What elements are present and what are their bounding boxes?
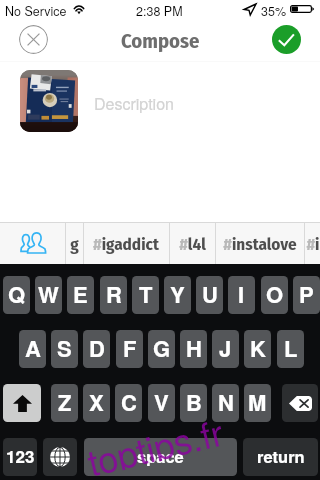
staticText: L bbox=[284, 332, 298, 364]
button[interactable]: U bbox=[196, 276, 223, 314]
button[interactable]: D bbox=[83, 330, 110, 368]
staticText: A bbox=[25, 332, 41, 364]
button[interactable]: E bbox=[67, 276, 94, 314]
staticText: 123 bbox=[6, 444, 35, 468]
button[interactable]: H bbox=[180, 330, 207, 368]
staticText: V bbox=[154, 386, 169, 418]
staticText: H bbox=[186, 332, 202, 364]
staticText: J bbox=[219, 332, 232, 364]
staticText: No Service bbox=[5, 2, 67, 20]
staticText: Y bbox=[170, 278, 185, 310]
button[interactable]: W bbox=[35, 276, 62, 314]
button[interactable]: M bbox=[244, 384, 271, 422]
staticText: W bbox=[38, 278, 59, 310]
staticText: B bbox=[186, 386, 202, 418]
button[interactable]: Tag people bbox=[0, 222, 65, 264]
staticText: U bbox=[202, 278, 218, 310]
staticText: G bbox=[153, 332, 171, 364]
button[interactable]: F bbox=[116, 330, 143, 368]
button[interactable]: #igaddict bbox=[83, 223, 169, 264]
button[interactable]: Shift bbox=[3, 384, 41, 422]
button[interactable]: Post bbox=[272, 25, 301, 54]
staticText: Q bbox=[8, 278, 26, 310]
button[interactable]: X bbox=[83, 384, 110, 422]
staticText: F bbox=[123, 332, 137, 364]
staticText: #l4l bbox=[179, 234, 206, 254]
button[interactable]: Q bbox=[3, 276, 30, 314]
staticText: X bbox=[89, 386, 104, 418]
staticText: T bbox=[139, 278, 153, 310]
staticText: D bbox=[89, 332, 105, 364]
button[interactable]: Y bbox=[164, 276, 191, 314]
button[interactable]: P bbox=[293, 276, 320, 314]
button[interactable]: S bbox=[51, 330, 78, 368]
staticText: R bbox=[106, 278, 122, 310]
button[interactable]: G bbox=[148, 330, 175, 368]
button[interactable]: g bbox=[65, 223, 83, 264]
staticText: Z bbox=[58, 386, 72, 418]
staticText: #igaddict bbox=[93, 234, 159, 254]
staticText: return bbox=[257, 444, 305, 468]
button[interactable]: Backspace bbox=[282, 384, 318, 422]
staticText: space bbox=[137, 444, 184, 468]
button[interactable]: O bbox=[261, 276, 288, 314]
button[interactable]: A bbox=[19, 330, 46, 368]
button[interactable]: L bbox=[277, 330, 304, 368]
staticText: M bbox=[248, 386, 267, 418]
staticText: 2:38 PM bbox=[136, 2, 183, 20]
staticText: #i bbox=[306, 234, 320, 254]
button[interactable]: V bbox=[148, 384, 175, 422]
button[interactable]: #l4l bbox=[169, 223, 215, 264]
button[interactable]: C bbox=[115, 384, 142, 422]
staticText: C bbox=[121, 386, 137, 418]
button[interactable]: K bbox=[244, 330, 271, 368]
staticText: S bbox=[57, 332, 72, 364]
button[interactable]: I bbox=[228, 276, 255, 314]
button[interactable]: Change keyboard bbox=[43, 438, 77, 476]
staticText: toptips.fr bbox=[82, 405, 226, 478]
staticText: 35% bbox=[261, 2, 287, 20]
staticText: N bbox=[218, 386, 234, 418]
button[interactable]: T bbox=[132, 276, 159, 314]
staticText: E bbox=[73, 278, 88, 310]
button[interactable]: #i bbox=[304, 223, 320, 264]
button[interactable]: J bbox=[212, 330, 239, 368]
button[interactable]: return bbox=[243, 438, 318, 476]
staticText: g bbox=[70, 234, 79, 254]
button[interactable]: B bbox=[180, 384, 207, 422]
staticText: K bbox=[250, 332, 266, 364]
button[interactable]: N bbox=[212, 384, 239, 422]
staticText: I bbox=[238, 278, 245, 310]
button[interactable]: Close bbox=[19, 25, 48, 54]
button[interactable]: space bbox=[84, 438, 237, 476]
button[interactable]: 123 bbox=[3, 438, 37, 476]
staticText: #instalove bbox=[223, 234, 297, 254]
button[interactable]: #instalove bbox=[215, 223, 304, 264]
button[interactable]: Z bbox=[51, 384, 78, 422]
staticText: O bbox=[266, 278, 284, 310]
staticText: Description bbox=[94, 92, 174, 115]
staticText: Compose bbox=[121, 29, 200, 54]
staticText: P bbox=[299, 278, 314, 310]
button[interactable]: R bbox=[100, 276, 127, 314]
